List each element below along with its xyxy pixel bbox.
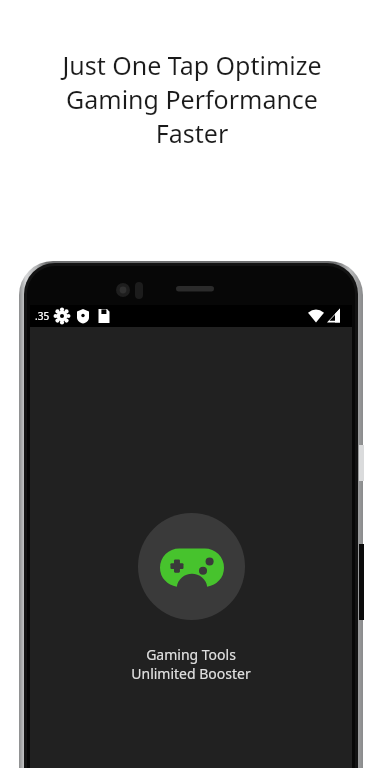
staticText: Just One Tap Optimize Gaming Performance…	[62, 48, 322, 150]
staticText: .35	[35, 309, 50, 323]
button[interactable]: Gaming Tools booster	[138, 513, 245, 620]
staticText: Gaming Tools Unlimited Booster	[131, 645, 251, 683]
